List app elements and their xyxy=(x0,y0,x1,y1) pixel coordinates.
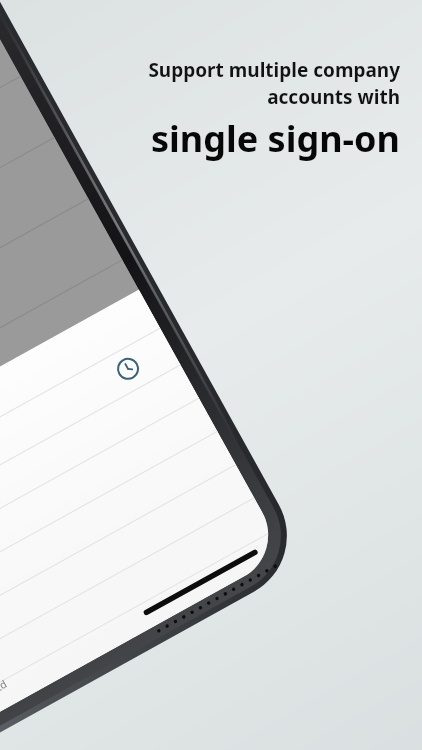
staticText: single sign-on xyxy=(36,114,400,163)
staticText: Hip Seng Construction Co Ltd xyxy=(0,677,9,750)
staticText: Support multiple company accounts with xyxy=(36,57,400,110)
button[interactable]: Hip Seng Construction Co Ltd xyxy=(0,677,9,750)
other: Phone showing company account picker xyxy=(0,0,422,750)
